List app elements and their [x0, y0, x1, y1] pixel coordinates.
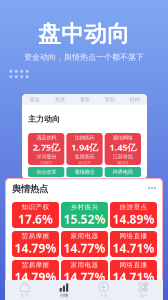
button[interactable]: 通信网络: [105, 133, 141, 165]
button[interactable]: 交易: [84, 280, 123, 300]
staticText: 15.52%: [63, 211, 105, 227]
button[interactable]: 旅游景点: [110, 202, 157, 228]
staticText: 14.89%: [112, 211, 154, 227]
staticText: 生物医药: [74, 134, 94, 141]
staticText: 家用电器: [70, 261, 98, 269]
staticText: 复星医药: [74, 153, 94, 160]
staticText: 14.77%: [63, 269, 105, 285]
staticText: 14.77%: [63, 240, 105, 256]
button[interactable]: 贸易摩擦: [12, 260, 59, 286]
button[interactable]: 我的: [123, 280, 163, 300]
staticText: 网络直播: [119, 261, 147, 269]
button[interactable]: 酒及饮料: [28, 133, 64, 165]
button[interactable]: 跨界电商: [105, 167, 141, 177]
button[interactable]: 重组概念: [66, 167, 103, 177]
staticText: 14.79%: [14, 240, 56, 256]
staticText: 异动: [104, 96, 114, 103]
staticText: 贸易摩擦: [21, 261, 49, 269]
staticText: 家用电器: [70, 232, 98, 240]
button[interactable]: 网络直播: [110, 231, 157, 257]
staticText: 网络直播: [119, 232, 147, 240]
staticText: 4122万: [78, 160, 90, 165]
button[interactable]: 机构: [122, 94, 147, 105]
button[interactable]: 更多: [145, 184, 159, 192]
staticText: 机构: [129, 96, 139, 103]
staticText: 资金: [29, 96, 39, 103]
button[interactable]: 首页: [5, 280, 44, 300]
staticText: 主力动向: [28, 114, 60, 124]
staticText: 旅游景点: [119, 203, 147, 211]
staticText: 涨停: [79, 96, 89, 103]
staticText: 盘中动向: [38, 20, 130, 48]
button[interactable]: 央企改革: [28, 167, 64, 177]
button[interactable]: 家用电器: [61, 260, 108, 286]
button[interactable]: 生物医药: [66, 133, 103, 165]
staticText: 江苏有线: [113, 153, 133, 160]
staticText: 舆情热点: [12, 183, 48, 195]
staticText: 3870万: [117, 160, 129, 165]
staticText: 1.45亿: [109, 141, 136, 153]
staticText: 通信网络: [113, 134, 133, 141]
staticText: 交易: [100, 293, 108, 298]
button[interactable]: 网络直播: [110, 260, 157, 286]
staticText: 1.94亿: [71, 141, 98, 153]
button[interactable]: 资金: [22, 94, 47, 105]
staticText: 龙虎: [54, 96, 64, 103]
button[interactable]: 家用电器: [61, 231, 108, 257]
button[interactable]: 乡村振兴: [61, 202, 108, 228]
button[interactable]: 行情: [44, 280, 84, 300]
staticText: 17.6%: [18, 211, 53, 227]
staticText: 乡村振兴: [70, 203, 98, 211]
staticText: 2.75亿: [33, 141, 60, 153]
staticText: 资金动向，舆情热点一个都不落下: [24, 52, 144, 62]
staticText: 重组概念: [74, 169, 94, 175]
staticText: 14.71%: [112, 240, 154, 256]
staticText: 洋河股份: [36, 153, 56, 160]
staticText: 我的: [139, 293, 147, 298]
staticText: 行情: [60, 293, 68, 298]
button[interactable]: 知识产权: [12, 202, 59, 228]
staticText: 5288万: [40, 160, 52, 165]
staticText: 14.79%: [14, 269, 56, 285]
staticText: 14.71%: [112, 269, 154, 285]
staticText: 首页: [21, 293, 29, 298]
staticText: 央企改革: [36, 169, 56, 175]
button[interactable]: 异动: [97, 94, 122, 105]
button[interactable]: 涨停: [72, 94, 97, 105]
staticText: 知识产权: [21, 203, 49, 211]
staticText: 跨界电商: [113, 169, 133, 175]
staticText: 酒及饮料: [36, 134, 56, 141]
button[interactable]: 龙虎: [47, 94, 72, 105]
button[interactable]: 贸易摩擦: [12, 231, 59, 257]
staticText: 贸易摩擦: [21, 232, 49, 240]
